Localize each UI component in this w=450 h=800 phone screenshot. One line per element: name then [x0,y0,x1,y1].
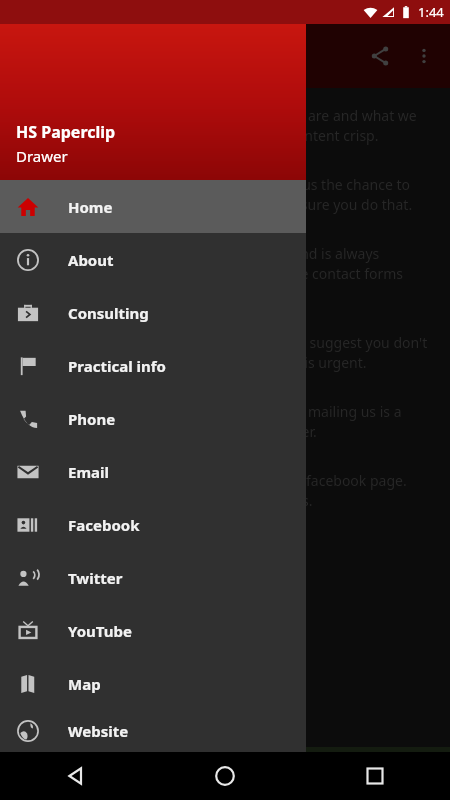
button[interactable]: Facebook [0,498,306,551]
staticText: Welcome! Here you can read about who we … [20,106,434,145]
staticText: Email [68,462,109,482]
button[interactable]: YouTube [0,604,306,657]
button[interactable]: Website [0,710,306,752]
staticText: Practical info [68,356,166,376]
button[interactable]: Home [150,752,300,800]
button[interactable]: Home [0,180,306,233]
staticText: Home [68,197,113,217]
staticText: Map [68,674,101,694]
staticText: You can also follow along on our social … [20,471,434,510]
staticText: Website [68,721,129,741]
staticText: Phone [68,409,116,429]
staticText: YouTube [68,621,132,641]
staticText: We value every question you send us. Giv… [20,175,434,214]
staticText: Drawer [16,146,68,166]
button[interactable]: Recent apps [300,752,450,800]
button[interactable]: Practical info [0,339,306,392]
button[interactable]: Map [0,657,306,710]
staticText: Twitter [68,568,123,588]
button[interactable]: Consulting [0,286,306,339]
button[interactable]: More options [406,38,442,74]
staticText: 1:44 [418,3,444,21]
button[interactable]: Phone [0,392,306,445]
staticText: If a reply takes a little longer than us… [20,333,434,372]
staticText: Consulting [68,303,149,323]
staticText: HS Paperclip [16,121,116,143]
button[interactable]: Twitter [0,551,306,604]
staticText: Facebook [68,515,140,535]
staticText: For anything that is not strictly time c… [20,402,434,441]
button[interactable]: About [0,233,306,286]
button[interactable]: Email [0,445,306,498]
staticText: About [68,250,114,270]
button[interactable]: Back [0,752,150,800]
staticText: Our team works from the office each day … [20,244,434,303]
button[interactable]: Share [360,36,400,76]
